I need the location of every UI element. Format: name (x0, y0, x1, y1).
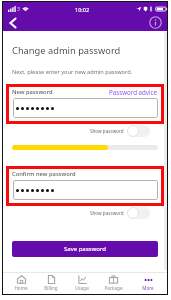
staticText: Password advice (109, 88, 158, 96)
staticText: Change admin password (12, 44, 121, 57)
staticText: Billing (44, 285, 58, 291)
staticText: Package (104, 285, 123, 291)
staticText: Show password (90, 128, 124, 134)
staticText: Show password (90, 210, 124, 216)
button[interactable]: Information (149, 16, 162, 29)
button[interactable] (13, 98, 158, 118)
button[interactable]: Back (5, 15, 21, 31)
staticText: Home (14, 285, 28, 291)
staticText: 3 (17, 6, 20, 13)
button[interactable]: Password advice (109, 88, 158, 96)
button[interactable]: Show password (127, 207, 150, 219)
button[interactable]: Usage (67, 273, 97, 294)
staticText: New password (12, 88, 53, 96)
button[interactable]: Package (98, 273, 128, 294)
button[interactable]: Show password (127, 125, 150, 137)
button[interactable]: Billing (36, 273, 66, 294)
staticText: Save password (64, 245, 106, 253)
button[interactable]: Home (6, 273, 36, 294)
staticText: Next, please enter your new admin passwo… (12, 68, 133, 76)
button[interactable] (13, 180, 158, 200)
staticText: 10:02 (75, 6, 90, 13)
button[interactable]: More (133, 273, 163, 294)
staticText: Usage (75, 285, 89, 291)
staticText: More (142, 285, 154, 291)
staticText: Confirm new password (12, 170, 76, 178)
button[interactable]: Save password (12, 241, 158, 257)
